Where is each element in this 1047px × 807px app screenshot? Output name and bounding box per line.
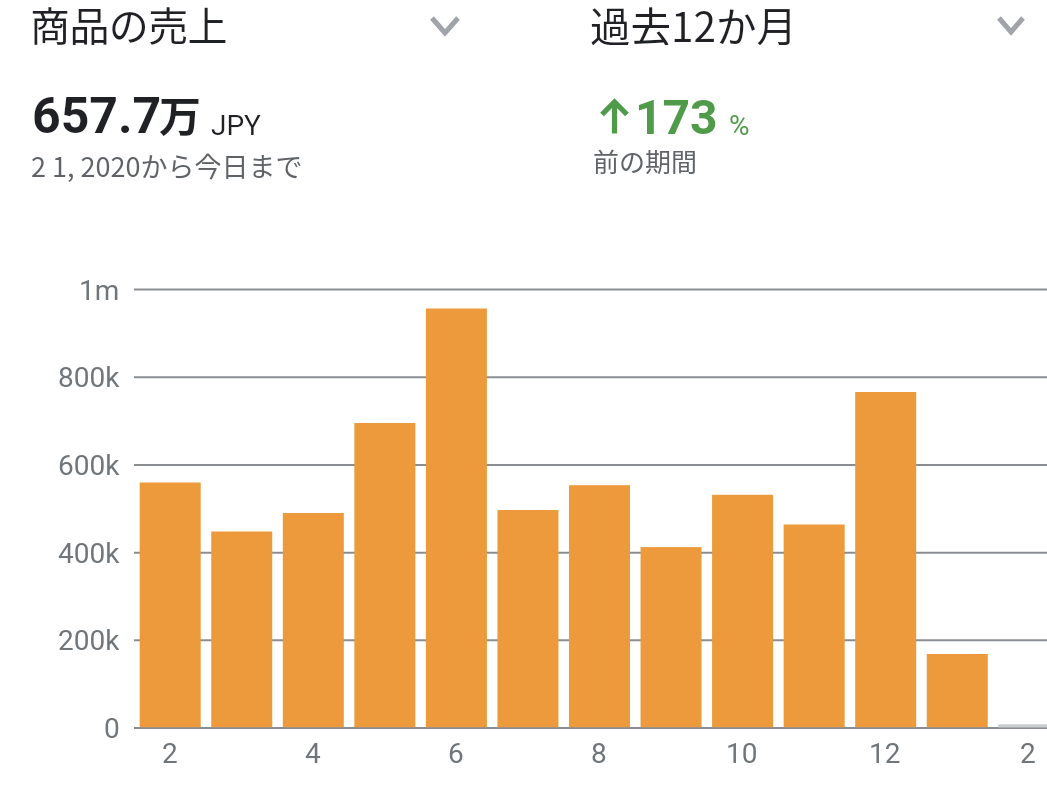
staticText: 173 xyxy=(635,89,718,145)
staticText: % xyxy=(729,109,750,142)
staticText: 800k xyxy=(58,361,120,394)
staticText: 600k xyxy=(58,449,120,482)
staticText: 400k xyxy=(58,537,120,570)
staticText: 1m xyxy=(79,274,120,307)
staticText: 657.7 xyxy=(32,87,162,146)
staticText: 過去12か月 xyxy=(590,0,797,45)
button[interactable]: 過去12か月 xyxy=(590,0,1025,45)
staticText: 2 1, 2020から今日まで xyxy=(31,146,303,185)
staticText: 10 xyxy=(726,737,758,770)
staticText: 4 xyxy=(305,737,321,770)
staticText: 商品の売上 xyxy=(30,0,227,45)
staticText: 前の期間 xyxy=(593,142,698,180)
staticText: 0 xyxy=(104,712,120,745)
staticText: 6 xyxy=(448,737,464,770)
staticText: 万 xyxy=(159,83,202,144)
button[interactable]: 商品の売上 xyxy=(29,0,465,45)
staticText: 8 xyxy=(591,737,607,770)
staticText: 2 xyxy=(162,737,178,770)
staticText: 12 xyxy=(869,737,901,770)
staticText: JPY xyxy=(211,109,261,142)
staticText: 200k xyxy=(58,624,120,657)
staticText: 2 xyxy=(1020,737,1036,770)
